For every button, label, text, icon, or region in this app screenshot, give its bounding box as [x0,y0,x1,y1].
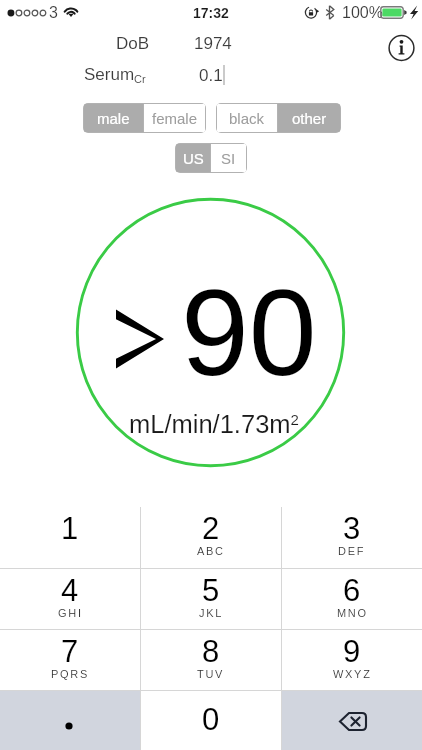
staticText: 8 [202,634,220,669]
staticText: mL/min/1.73m2 [129,410,299,438]
button[interactable]: male [84,104,143,132]
button[interactable]: female [144,104,205,132]
staticText: DEF [338,545,366,557]
staticText: US [183,150,204,167]
button[interactable]: 2 [141,507,281,568]
staticText: WXYZ [333,668,372,680]
button[interactable]: 1 [0,507,140,568]
button[interactable]: Backspace [282,691,422,750]
staticText: MNO [337,607,368,619]
staticText: PQRS [51,668,89,680]
staticText: 0 [202,702,220,737]
staticText: 0.1 [199,66,223,85]
staticText: DoB [116,34,150,53]
staticText: SI [221,150,236,167]
button[interactable]: 3 [282,507,422,568]
button[interactable]: 5 [141,569,281,629]
staticText: 17:32 [193,5,229,21]
button[interactable]: 0 [141,691,281,750]
staticText: other [292,110,327,127]
staticText: 4 [61,573,79,608]
staticText: male [97,110,130,127]
button[interactable]: US [176,144,210,172]
staticText: 3 [343,511,361,546]
staticText: black [229,110,265,127]
staticText: female [152,110,198,127]
staticText: 1974 [194,34,232,53]
button[interactable]: Info [387,36,415,60]
staticText: JKL [199,607,224,619]
staticText: 3 [49,4,58,22]
staticText: 9 [343,634,361,669]
staticText: 7 [61,634,79,669]
staticText: SerumCr [84,65,146,86]
staticText: 100% [342,4,383,22]
button[interactable]: SI [211,144,246,172]
staticText: GHI [58,607,83,619]
staticText: 6 [343,573,361,608]
button[interactable]: Decimal point [0,691,140,750]
staticText: 2 [202,511,220,546]
staticText: 90 [181,265,317,401]
button[interactable]: 6 [282,569,422,629]
staticText: TUV [197,668,225,680]
button[interactable]: other [278,104,340,132]
button[interactable]: 8 [141,630,281,690]
staticText: ABC [197,545,225,557]
button[interactable]: black [217,104,277,132]
button[interactable]: 4 [0,569,140,629]
button[interactable]: 9 [282,630,422,690]
staticText: 1 [61,511,79,546]
staticText: 5 [202,573,220,608]
button[interactable]: 7 [0,630,140,690]
